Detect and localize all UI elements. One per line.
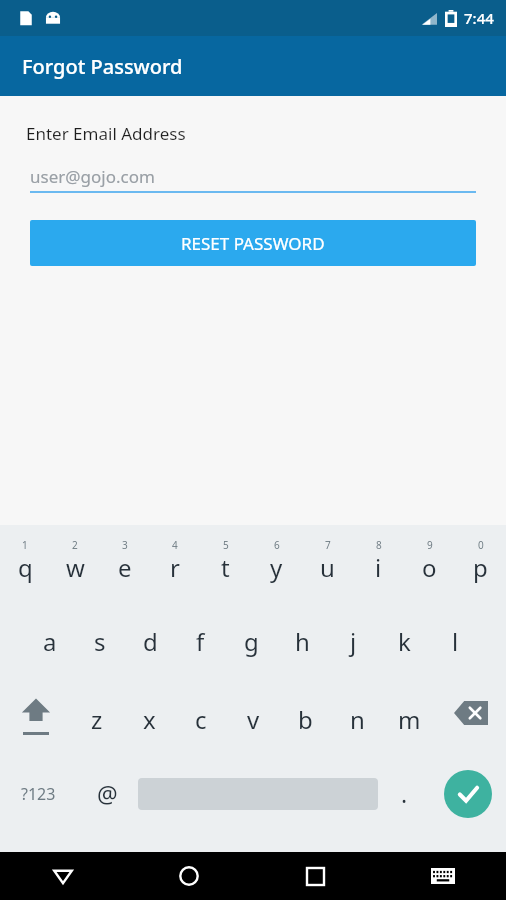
staticText: s xyxy=(94,625,106,658)
staticText: j xyxy=(350,625,357,658)
staticText: . xyxy=(401,778,408,809)
staticText: c xyxy=(195,703,207,736)
staticText: l xyxy=(452,625,459,658)
button[interactable]: 1 xyxy=(0,525,50,603)
staticText: b xyxy=(298,703,313,736)
staticText: 8 xyxy=(376,538,382,552)
button[interactable]: c xyxy=(175,681,227,759)
button[interactable]: 6 xyxy=(251,525,302,603)
staticText: w xyxy=(66,551,85,584)
button[interactable]: 2 xyxy=(50,525,100,603)
button[interactable]: g xyxy=(226,603,277,681)
button[interactable]: x xyxy=(123,681,175,759)
button[interactable]: Recent apps xyxy=(252,852,379,900)
staticText: 9 xyxy=(427,538,433,552)
staticText: m xyxy=(398,703,421,736)
button[interactable]: 4 xyxy=(150,525,200,603)
button[interactable]: RESET PASSWORD xyxy=(30,220,476,266)
staticText: e xyxy=(118,551,132,584)
staticText: @ xyxy=(97,778,118,809)
staticText: x xyxy=(143,703,156,736)
button[interactable]: s xyxy=(75,603,125,681)
staticText: f xyxy=(196,625,205,658)
staticText: q xyxy=(18,551,33,584)
staticText: ?123 xyxy=(21,783,56,805)
button[interactable]: Back xyxy=(0,852,126,900)
staticText: d xyxy=(143,625,158,658)
staticText: 0 xyxy=(478,538,484,552)
button[interactable]: m xyxy=(383,681,435,759)
staticText: v xyxy=(247,703,260,736)
button[interactable]: n xyxy=(331,681,383,759)
staticText: RESET PASSWORD xyxy=(181,232,325,255)
staticText: t xyxy=(221,551,230,584)
button[interactable]: z xyxy=(71,681,123,759)
staticText: Enter Email Address xyxy=(26,122,186,145)
staticText: i xyxy=(375,551,382,584)
button[interactable]: ?123 xyxy=(0,759,76,852)
staticText: g xyxy=(244,625,259,658)
staticText: z xyxy=(91,703,103,736)
button[interactable]: user@gojo.com xyxy=(30,161,476,191)
button[interactable]: @ xyxy=(76,759,138,852)
staticText: r xyxy=(170,551,180,584)
button[interactable]: Backspace xyxy=(435,681,506,759)
button[interactable]: d xyxy=(125,603,175,681)
button[interactable]: 5 xyxy=(200,525,251,603)
staticText: 1 xyxy=(22,538,28,552)
staticText: y xyxy=(270,551,283,584)
button[interactable]: 8 xyxy=(353,525,404,603)
button[interactable]: Enter xyxy=(430,759,506,852)
button[interactable]: Home xyxy=(126,852,252,900)
staticText: 5 xyxy=(223,538,229,552)
button[interactable]: k xyxy=(379,603,430,681)
button[interactable]: . xyxy=(378,759,430,852)
button[interactable]: a xyxy=(25,603,75,681)
staticText: user@gojo.com xyxy=(30,165,155,188)
button[interactable]: Change keyboard xyxy=(379,852,506,900)
staticText: h xyxy=(295,625,310,658)
staticText: Forgot Password xyxy=(22,53,183,80)
button[interactable]: f xyxy=(175,603,226,681)
button[interactable]: h xyxy=(277,603,328,681)
staticText: n xyxy=(350,703,365,736)
button[interactable]: Shift xyxy=(0,681,71,759)
staticText: 6 xyxy=(274,538,280,552)
staticText: 4 xyxy=(172,538,178,552)
button[interactable]: 9 xyxy=(404,525,455,603)
button[interactable]: 0 xyxy=(455,525,506,603)
button[interactable]: b xyxy=(279,681,331,759)
staticText: p xyxy=(473,551,488,584)
staticText: 3 xyxy=(122,538,128,552)
staticText: 2 xyxy=(72,538,78,552)
staticText: o xyxy=(422,551,437,584)
button[interactable]: j xyxy=(328,603,379,681)
button[interactable]: 7 xyxy=(302,525,353,603)
staticText: 7:44 xyxy=(464,8,494,28)
button[interactable]: v xyxy=(227,681,279,759)
button[interactable]: 3 xyxy=(100,525,150,603)
button[interactable]: Space xyxy=(138,759,378,852)
staticText: a xyxy=(43,625,57,658)
button[interactable]: l xyxy=(430,603,481,681)
staticText: u xyxy=(320,551,335,584)
staticText: k xyxy=(398,625,411,658)
staticText: 7 xyxy=(325,538,331,552)
